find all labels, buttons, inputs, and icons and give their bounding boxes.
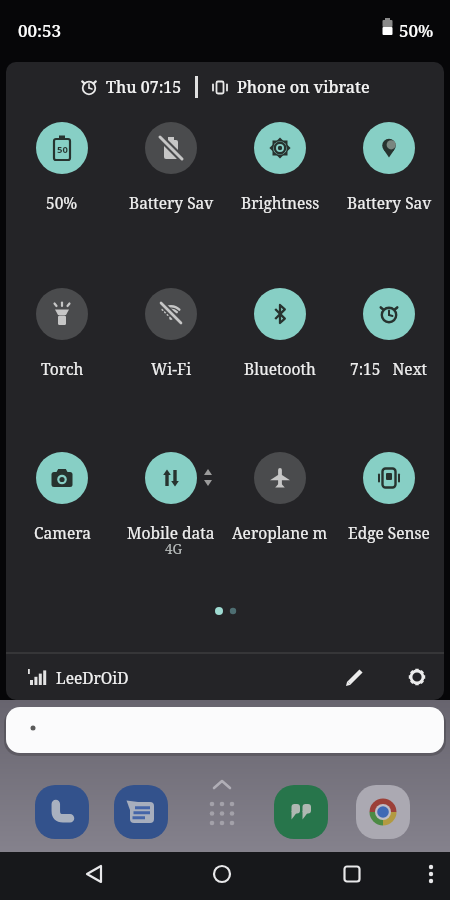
button[interactable]: Torch	[7, 288, 116, 379]
button[interactable]: Aeroplane m	[225, 452, 334, 543]
button[interactable]	[335, 657, 375, 697]
button[interactable]	[198, 852, 246, 900]
button[interactable]	[356, 785, 410, 839]
button[interactable]: Battery Sav	[116, 122, 225, 213]
button[interactable]: Mobile data	[116, 452, 225, 543]
button[interactable]: Edge Sense	[334, 452, 443, 543]
button[interactable]: Camera	[7, 452, 116, 543]
staticText: 50%	[46, 192, 78, 213]
staticText: Mobile data	[127, 522, 215, 543]
staticText: Brightness	[241, 192, 320, 213]
button[interactable]	[114, 785, 168, 839]
staticText: Camera	[34, 522, 91, 543]
staticText: 50%	[399, 19, 434, 42]
staticText: 50	[57, 143, 68, 156]
button[interactable]: Wi-Fi	[116, 288, 225, 379]
button[interactable]: 50	[7, 122, 116, 213]
staticText: Bluetooth	[244, 358, 316, 379]
button[interactable]: Bluetooth	[225, 288, 334, 379]
button[interactable]: Brightness	[225, 122, 334, 213]
button[interactable]	[328, 852, 376, 900]
staticText: Phone on vibrate	[237, 76, 370, 98]
button[interactable]	[35, 785, 89, 839]
button[interactable]	[198, 776, 246, 832]
button[interactable]: 7:15 Next	[334, 288, 443, 379]
staticText: LeeDrOiD	[56, 667, 129, 688]
staticText: Aeroplane m	[232, 522, 328, 543]
button[interactable]	[6, 707, 444, 753]
staticText: Thu 07:15	[106, 76, 182, 98]
staticText: Torch	[41, 358, 84, 379]
button[interactable]	[71, 852, 119, 900]
staticText: Battery Sav	[129, 192, 214, 213]
staticText: 00:53	[18, 19, 62, 42]
staticText: 7:15 Next	[350, 358, 428, 379]
staticText: 4G	[165, 540, 183, 558]
staticText: Wi-Fi	[151, 358, 192, 379]
button[interactable]	[274, 785, 328, 839]
button[interactable]	[407, 852, 450, 900]
staticText: Battery Sav	[347, 192, 432, 213]
button[interactable]: Battery Sav	[334, 122, 443, 213]
button[interactable]: LeeDrOiD	[28, 667, 129, 688]
button[interactable]	[397, 657, 437, 697]
staticText: Edge Sense	[348, 522, 430, 543]
